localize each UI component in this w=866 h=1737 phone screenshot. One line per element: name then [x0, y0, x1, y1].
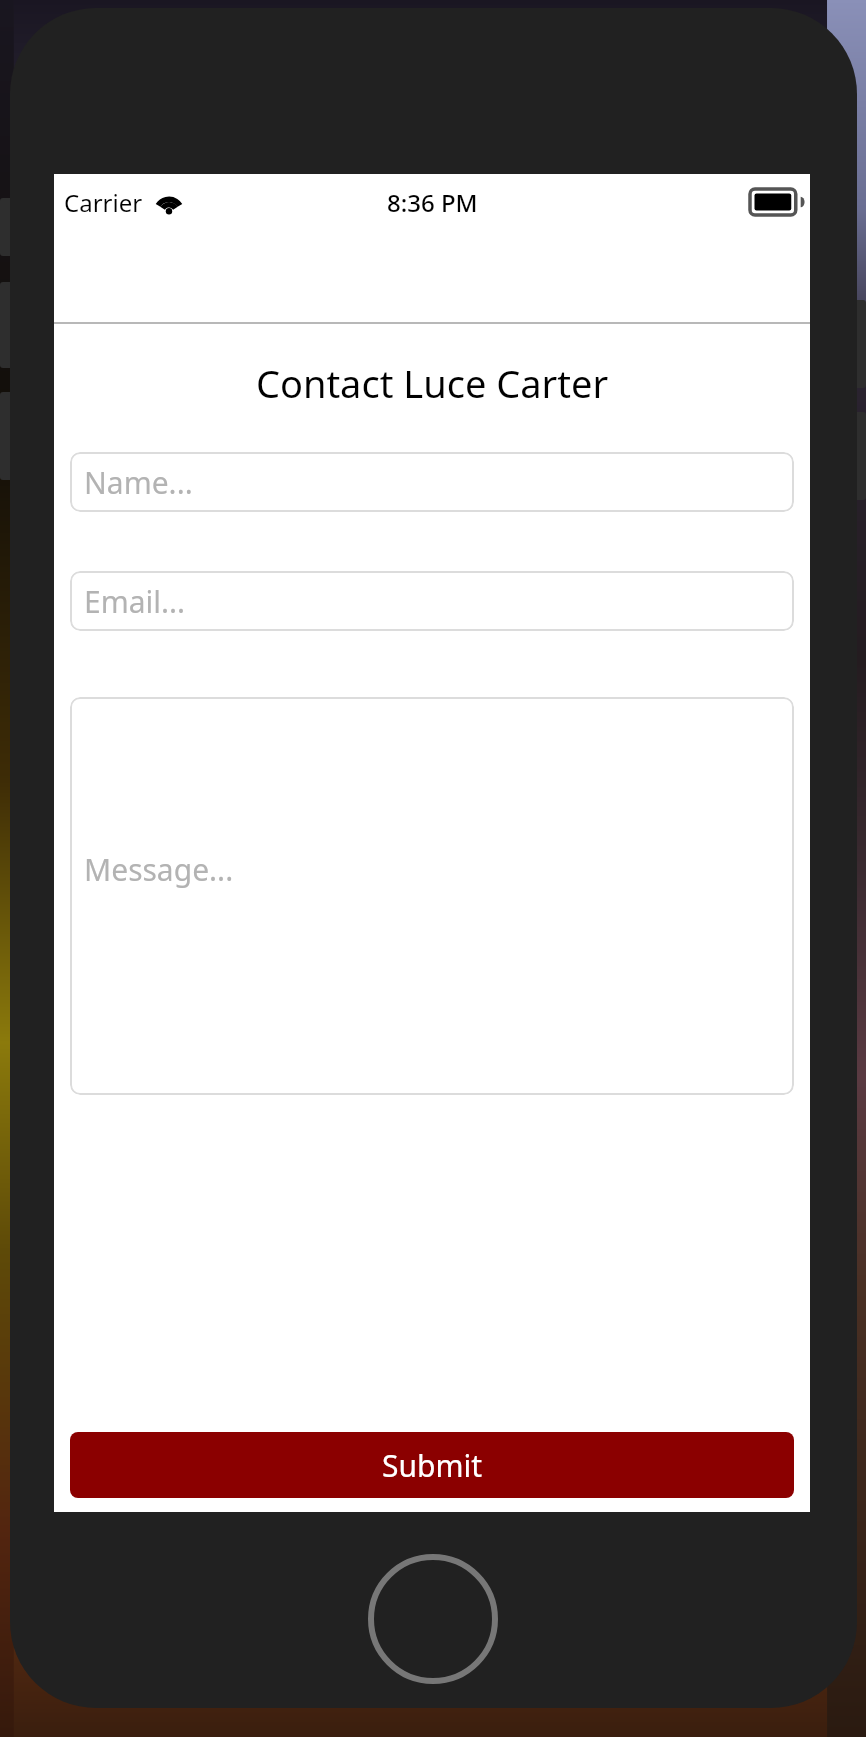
staticText: Email... [84, 581, 186, 622]
staticText: Name... [84, 462, 193, 503]
button[interactable]: Submit [70, 1432, 794, 1498]
staticText: Contact Luce Carter [54, 357, 810, 409]
staticText: Submit [382, 1445, 483, 1486]
button[interactable]: Name... [70, 452, 794, 512]
staticText: Message... [84, 849, 234, 890]
staticText: Carrier [64, 186, 143, 219]
button[interactable]: Email... [70, 571, 794, 631]
staticText: 8:36 PM [387, 186, 478, 219]
button[interactable]: Message... [70, 697, 794, 1095]
